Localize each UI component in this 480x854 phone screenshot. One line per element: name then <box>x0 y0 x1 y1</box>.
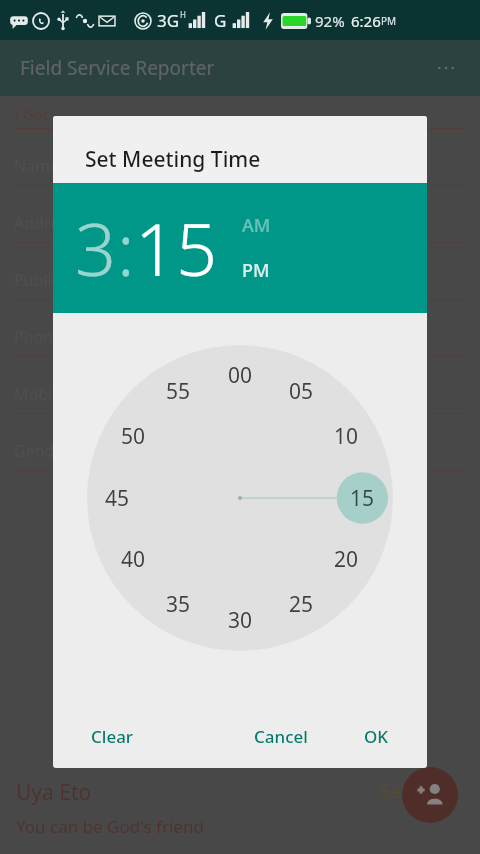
staticText: Saturday <box>380 778 460 804</box>
staticText: Set Meeting Time <box>85 145 261 174</box>
staticText: 15 <box>135 199 218 297</box>
staticText: 35 <box>166 590 191 619</box>
staticText: Address <box>14 212 75 234</box>
staticText: 50 <box>121 422 146 451</box>
staticText: 92% <box>315 11 345 31</box>
staticText: PM <box>242 258 270 283</box>
staticText: AM <box>242 213 271 238</box>
staticText: Uya Eto <box>16 778 92 807</box>
staticText: You can be God's friend <box>16 815 204 838</box>
staticText: : <box>117 199 135 297</box>
staticText: Publication <box>14 269 98 291</box>
staticText: Name <box>14 155 60 177</box>
staticText: Field Service Reporter <box>20 55 215 81</box>
staticText: 3G <box>157 9 180 32</box>
button[interactable]: Clear <box>83 717 142 756</box>
staticText: 05 <box>289 377 314 406</box>
staticText: 15 <box>350 484 375 513</box>
staticText: Phone <box>14 326 63 348</box>
button[interactable]: Minute dial <box>87 345 393 651</box>
staticText: 10 <box>334 422 359 451</box>
button[interactable]: AM <box>240 211 273 240</box>
staticText: OK <box>364 725 389 748</box>
staticText: 20 <box>334 545 359 574</box>
staticText: 25 <box>289 590 314 619</box>
staticText: 00 <box>228 361 253 390</box>
staticText: H <box>180 9 186 20</box>
button[interactable]: More options <box>430 52 462 84</box>
staticText: 30 <box>228 606 253 635</box>
staticText: Cancel <box>254 725 308 748</box>
staticText: 55 <box>166 377 191 406</box>
staticText: Clear <box>91 725 134 748</box>
button[interactable]: OK <box>356 717 397 756</box>
staticText: 40 <box>121 545 146 574</box>
staticText: 6:26 <box>351 11 381 31</box>
button[interactable]: PM <box>240 256 272 285</box>
staticText: 3 <box>75 199 117 297</box>
staticText: PM <box>381 14 397 28</box>
staticText: G <box>214 9 227 32</box>
staticText: I Got <box>14 104 49 124</box>
button[interactable]: Cancel <box>246 717 316 756</box>
staticText: 45 <box>105 484 130 513</box>
button[interactable]: Add contact <box>402 767 458 823</box>
staticText: Mobile <box>14 383 66 405</box>
staticText: Gender <box>14 440 71 462</box>
